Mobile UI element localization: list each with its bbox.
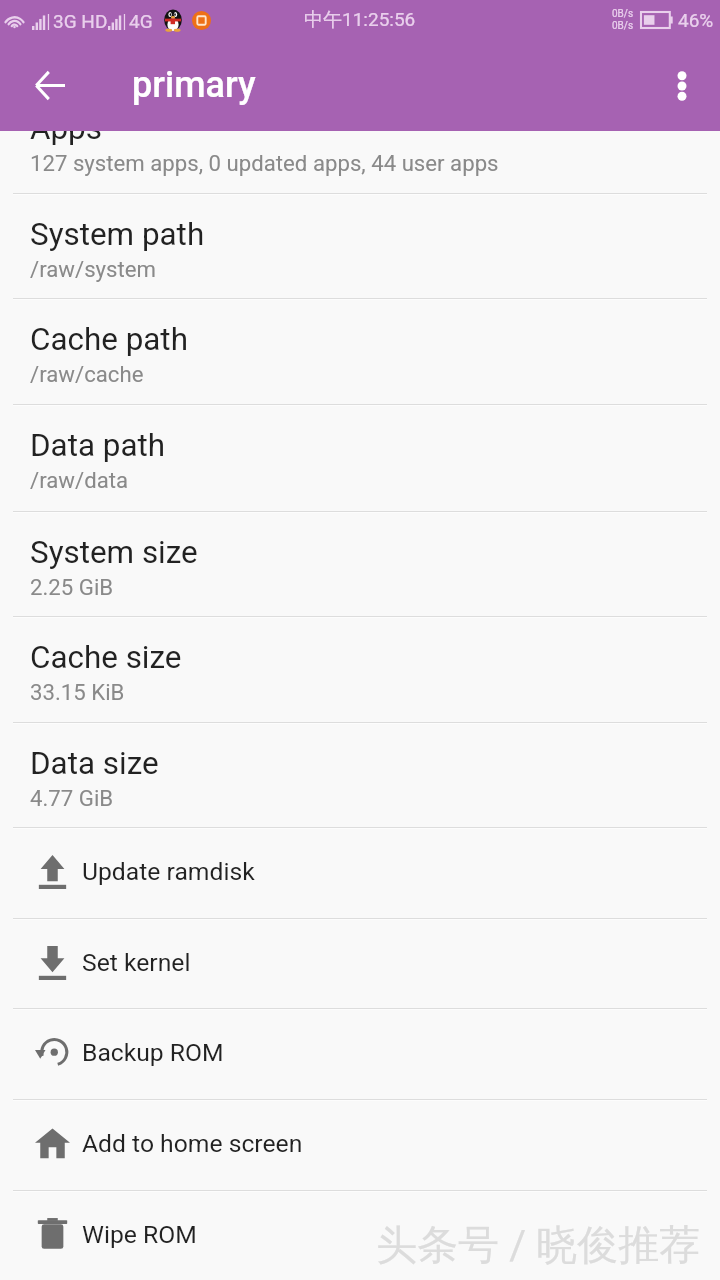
staticText: 中午11:25:56 bbox=[304, 8, 416, 32]
button[interactable]: More options bbox=[650, 54, 714, 118]
staticText: Set kernel bbox=[82, 948, 191, 977]
staticText: System size bbox=[30, 534, 198, 571]
staticText: 0B/s bbox=[612, 8, 634, 20]
staticText: /raw/system bbox=[30, 256, 157, 282]
button[interactable]: Add to home screen bbox=[0, 1101, 720, 1190]
staticText: System path bbox=[30, 216, 205, 253]
button[interactable]: Set kernel bbox=[0, 920, 720, 1008]
staticText: Cache size bbox=[30, 639, 182, 676]
staticText: 46% bbox=[678, 9, 714, 31]
button[interactable]: System size bbox=[0, 513, 720, 616]
staticText: Data size bbox=[30, 745, 159, 782]
button[interactable]: System path bbox=[0, 195, 720, 298]
button[interactable]: Cache path bbox=[0, 300, 720, 404]
button[interactable]: Data size bbox=[0, 724, 720, 827]
staticText: Data path bbox=[30, 427, 166, 464]
staticText: 4.77 GiB bbox=[30, 785, 114, 811]
staticText: /raw/cache bbox=[30, 361, 144, 387]
button[interactable]: Cache size bbox=[0, 618, 720, 722]
staticText: Add to home screen bbox=[82, 1129, 303, 1158]
button[interactable]: Update ramdisk bbox=[0, 829, 720, 918]
staticText: 127 system apps, 0 updated apps, 44 user… bbox=[30, 150, 499, 176]
staticText: 4G bbox=[129, 10, 153, 32]
staticText: 2.25 GiB bbox=[30, 574, 114, 600]
staticText: 33.15 KiB bbox=[30, 679, 125, 705]
button[interactable]: Backup ROM bbox=[0, 1010, 720, 1099]
staticText: 0B/s bbox=[612, 20, 634, 32]
staticText: Backup ROM bbox=[82, 1038, 224, 1067]
staticText: Wipe ROM bbox=[82, 1220, 197, 1249]
staticText: /raw/data bbox=[30, 467, 129, 493]
button[interactable]: Apps bbox=[0, 131, 720, 193]
staticText: Update ramdisk bbox=[82, 857, 255, 886]
button[interactable]: Navigate up bbox=[14, 50, 86, 122]
button[interactable]: Data path bbox=[0, 406, 720, 511]
staticText: 3G HD bbox=[53, 10, 108, 32]
staticText: Apps bbox=[30, 131, 102, 147]
staticText: primary bbox=[132, 64, 256, 106]
staticText: Cache path bbox=[30, 321, 188, 358]
button[interactable]: Wipe ROM bbox=[0, 1192, 720, 1280]
staticText: 头条号 / 晓俊推荐 bbox=[376, 1220, 701, 1272]
